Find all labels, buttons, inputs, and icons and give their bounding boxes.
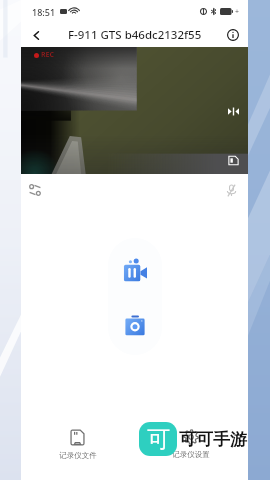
button[interactable]: Microphone muted xyxy=(220,179,242,201)
button[interactable]: Fit screen xyxy=(224,102,242,120)
button[interactable]: 记录仪文件 xyxy=(21,425,134,460)
staticText: 可可手游 xyxy=(179,429,247,450)
staticText: 记录仪设置 xyxy=(172,450,210,459)
staticText: REC xyxy=(41,50,55,60)
staticText: 可 xyxy=(147,425,170,454)
button[interactable]: Pause recording xyxy=(118,253,152,287)
staticText: F-911 GTS b46dc2132f55 xyxy=(68,27,202,43)
button[interactable]: Info xyxy=(223,25,243,45)
staticText: + xyxy=(235,7,240,17)
button[interactable]: Switch camera xyxy=(24,179,46,201)
staticText: 记录仪文件 xyxy=(59,451,97,460)
button[interactable]: Back xyxy=(26,25,46,45)
staticText: 18:51 xyxy=(32,6,56,18)
button[interactable]: Take photo xyxy=(118,308,152,342)
button[interactable]: 记录仪设置 xyxy=(134,425,248,459)
button[interactable]: Split screen xyxy=(224,151,242,169)
